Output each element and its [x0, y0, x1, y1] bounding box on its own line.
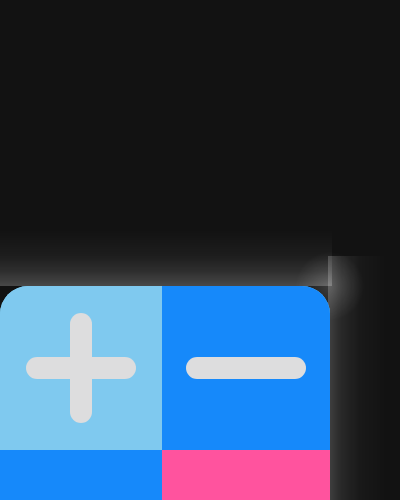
button[interactable]: Plus — [0, 286, 162, 450]
button[interactable]: Minus — [162, 286, 330, 450]
